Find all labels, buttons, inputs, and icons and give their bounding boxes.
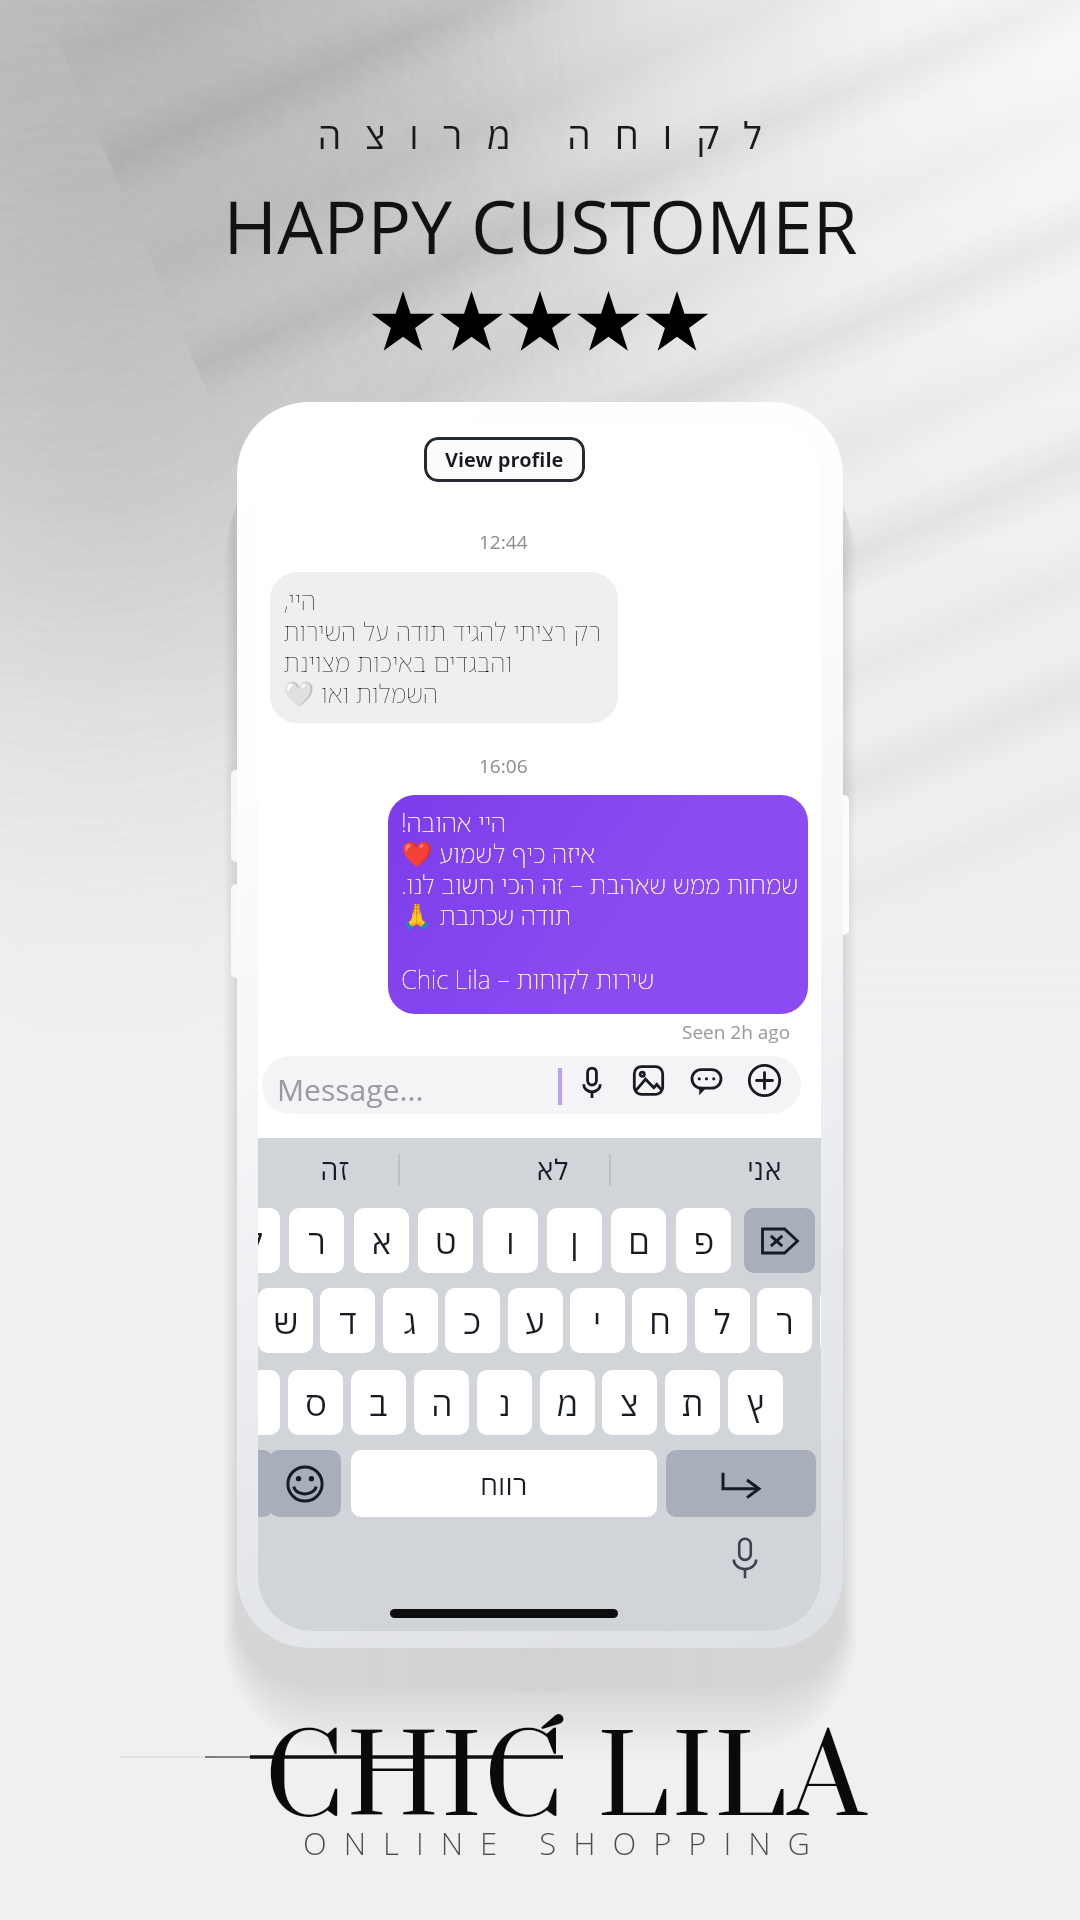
staticText: צ (620, 1381, 639, 1425)
staticText: Seen 2h ago (682, 1019, 791, 1045)
button[interactable]: Record voice message (579, 1066, 605, 1100)
button[interactable]: אני (715, 1138, 815, 1200)
button[interactable]: י (570, 1288, 625, 1353)
staticText: רק רציתי להגיד תודה על השירות (283, 614, 601, 648)
button[interactable]: מ (540, 1370, 595, 1435)
button[interactable]: ת (665, 1370, 720, 1435)
staticText: א (371, 1219, 393, 1263)
staticText: ר (776, 1299, 794, 1343)
button[interactable]: ט (418, 1208, 473, 1273)
button[interactable]: ן (547, 1208, 602, 1273)
staticText: View profile (445, 446, 564, 473)
staticText: 16:06 (479, 753, 528, 779)
button[interactable]: Voice input (728, 1536, 762, 1582)
staticText: HAPPY CUSTOMER (223, 176, 858, 275)
button[interactable]: רווח (351, 1450, 657, 1517)
staticText: Message... (277, 1069, 424, 1110)
staticText: כ (463, 1299, 482, 1343)
staticText: זה (320, 1150, 350, 1188)
staticText: השמלות ואו 🤍 (283, 676, 438, 710)
button[interactable]: Emoji (269, 1450, 341, 1517)
staticText: תודה שכתבת 🙏 (401, 898, 571, 932)
button[interactable]: ז (258, 1370, 280, 1435)
button[interactable]: היי אהובה! (388, 795, 808, 1014)
button[interactable]: ל (695, 1288, 750, 1353)
staticText: ח (649, 1299, 671, 1343)
staticText: שירות לקוחות – Chic Lila (401, 962, 654, 996)
button[interactable]: Backspace (744, 1208, 815, 1273)
button[interactable]: א (354, 1208, 409, 1273)
staticText: ג (403, 1299, 418, 1343)
button[interactable]: ף (820, 1288, 821, 1353)
staticText: והבגדים באיכות מצוינת (283, 645, 512, 679)
staticText: פ (693, 1219, 715, 1263)
staticText: ר (308, 1219, 326, 1263)
staticText: ס (305, 1381, 327, 1425)
staticText: ן (570, 1219, 579, 1263)
staticText: ל (714, 1299, 731, 1343)
button[interactable]: More options (748, 1064, 781, 1097)
staticText: ד (339, 1299, 357, 1343)
button[interactable]: Send photo (632, 1064, 665, 1097)
button[interactable]: צ (602, 1370, 657, 1435)
button[interactable]: Enter (666, 1450, 816, 1517)
staticText: CHIĆ LILA (265, 1710, 869, 1854)
button[interactable]: ק (258, 1208, 280, 1273)
button[interactable]: היי, (270, 572, 618, 723)
button[interactable]: זה (285, 1138, 385, 1200)
button[interactable]: ש (258, 1288, 313, 1353)
button[interactable]: ע (508, 1288, 563, 1353)
button[interactable]: ר (757, 1288, 812, 1353)
button[interactable]: ב (351, 1370, 406, 1435)
button[interactable]: נ (477, 1370, 532, 1435)
button[interactable] (262, 1056, 801, 1114)
staticText: לקוחה מרוצה (317, 110, 785, 159)
staticText: 12:44 (479, 529, 528, 555)
staticText: י (593, 1299, 602, 1343)
button[interactable]: ם (611, 1208, 666, 1273)
button[interactable]: ו (483, 1208, 538, 1273)
button[interactable]: ג (383, 1288, 438, 1353)
button[interactable]: ס (288, 1370, 343, 1435)
staticText: ו (506, 1219, 515, 1263)
button[interactable]: ה (414, 1370, 469, 1435)
button[interactable]: כ (445, 1288, 500, 1353)
staticText: היי, (283, 583, 316, 617)
staticText: ש (273, 1299, 299, 1343)
staticText: היי אהובה! (401, 805, 506, 839)
staticText: ת (681, 1381, 704, 1425)
staticText: איזה כיף לשמוע ❤️ (401, 836, 595, 870)
button[interactable]: View profile (424, 437, 585, 482)
button[interactable]: לא (502, 1138, 602, 1200)
staticText: ק (258, 1219, 263, 1263)
button[interactable]: ד (320, 1288, 375, 1353)
button[interactable]: פ (676, 1208, 731, 1273)
staticText: ם (628, 1219, 650, 1263)
staticText: ץ (747, 1381, 765, 1425)
staticText: ט (435, 1219, 457, 1263)
button[interactable]: Stickers (690, 1065, 723, 1098)
staticText: ב (369, 1381, 388, 1425)
button[interactable]: ץ (728, 1370, 783, 1435)
staticText: רווח (480, 1466, 528, 1502)
staticText: לא (536, 1150, 568, 1188)
staticText: מ (556, 1381, 579, 1425)
staticText: ONLINE SHOPPING (303, 1822, 828, 1864)
staticText: ה (431, 1381, 453, 1425)
button[interactable]: ח (632, 1288, 687, 1353)
staticText: אני (747, 1150, 783, 1188)
staticText: שמחות ממש שאהבת – זה הכי חשוב לנו. (401, 867, 798, 901)
staticText: נ (499, 1381, 511, 1425)
button[interactable]: ר (289, 1208, 344, 1273)
staticText: ע (525, 1299, 546, 1343)
